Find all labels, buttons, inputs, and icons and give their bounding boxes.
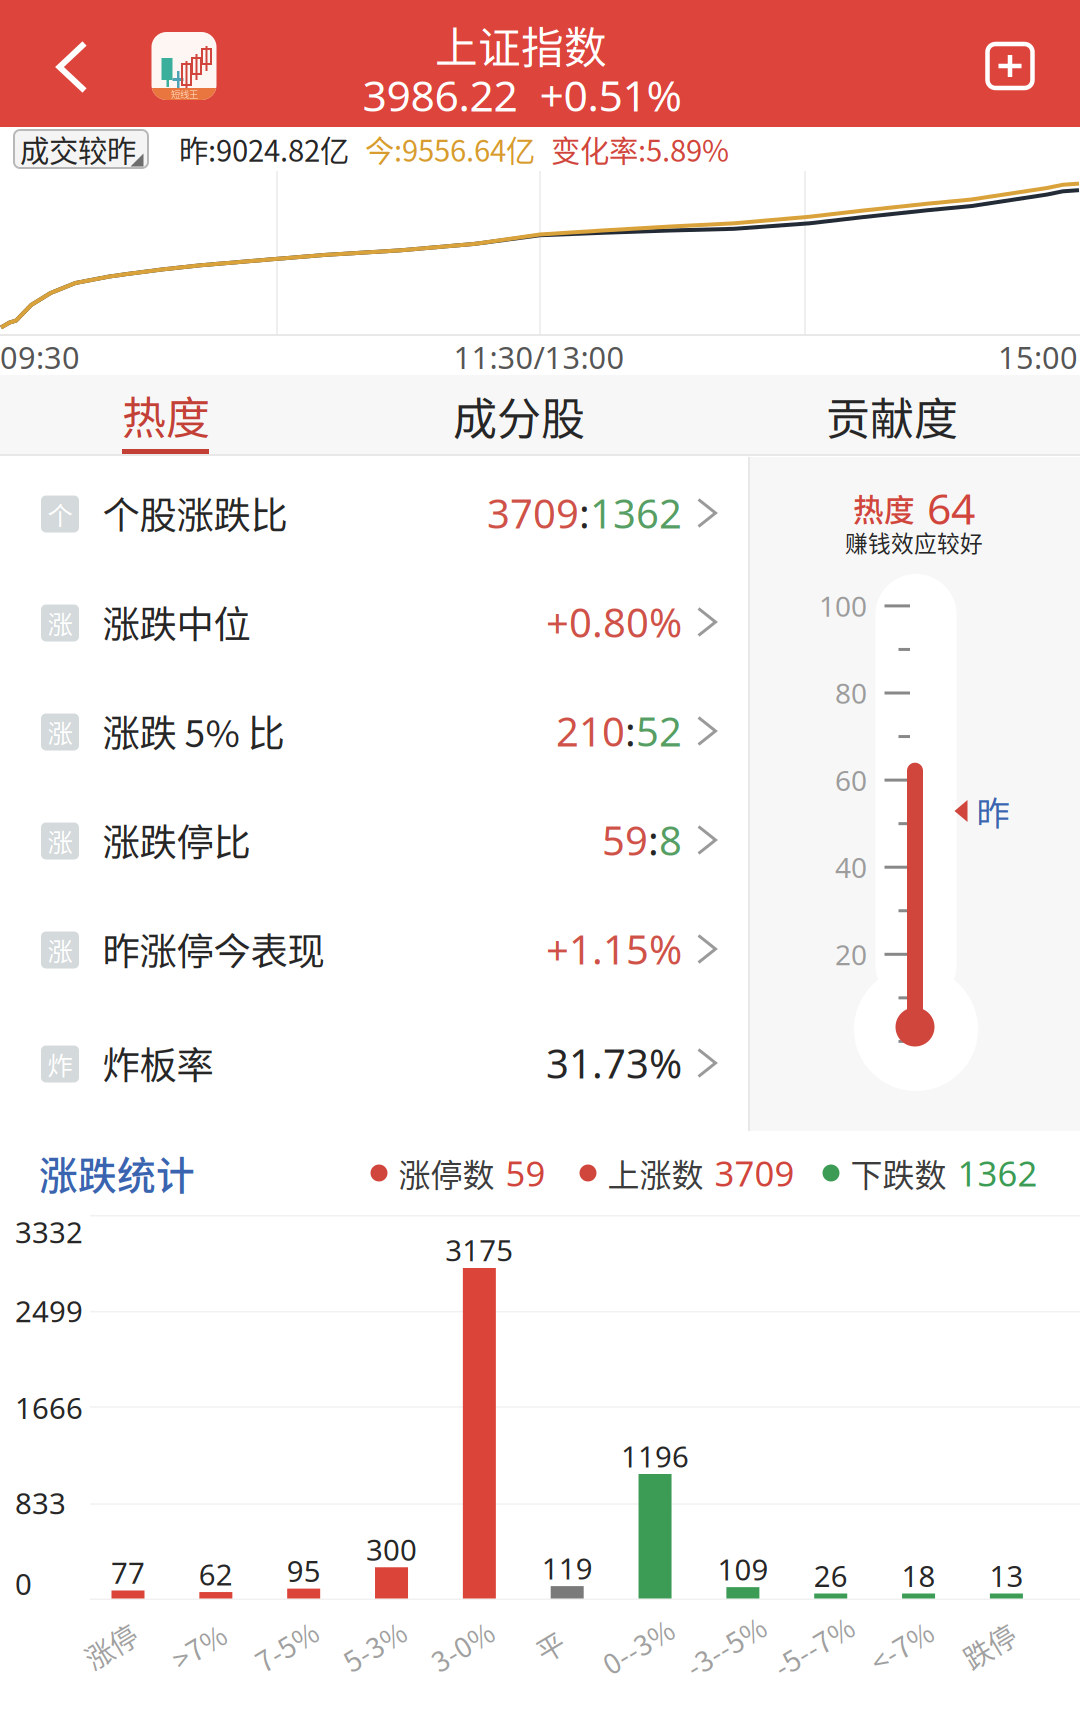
staticText: 炸板率 bbox=[102, 1036, 213, 1090]
staticText: 52 bbox=[636, 704, 682, 758]
staticText: 8 bbox=[659, 813, 682, 867]
staticText: 7-5% bbox=[253, 1626, 321, 1666]
staticText: 3332 bbox=[15, 1212, 83, 1252]
staticText: 下跌数 bbox=[850, 1150, 946, 1196]
staticText: 20 bbox=[835, 935, 867, 973]
button[interactable]: 成分股 bbox=[339, 375, 699, 456]
staticText: 833 bbox=[15, 1483, 66, 1523]
staticText: 80 bbox=[835, 674, 867, 712]
staticText: 77 bbox=[111, 1552, 145, 1592]
staticText: 3175 bbox=[445, 1230, 513, 1270]
staticText: 300 bbox=[366, 1529, 417, 1569]
staticText: 炸 bbox=[47, 1046, 72, 1082]
staticText: 跌停 bbox=[961, 1626, 1017, 1666]
button[interactable]: 成交较昨 bbox=[14, 130, 148, 168]
staticText: 今:9556.64亿 bbox=[365, 128, 535, 170]
staticText: 上证指数 bbox=[435, 14, 607, 76]
staticText: 5-3% bbox=[340, 1626, 408, 1666]
button[interactable]: 炸 bbox=[0, 1009, 748, 1119]
staticText: 平 bbox=[536, 1626, 564, 1666]
button[interactable]: Add bbox=[969, 26, 1050, 106]
staticText: 个 bbox=[47, 496, 72, 532]
button[interactable]: 涨 bbox=[0, 568, 748, 678]
staticText: 涨跌 5% 比 bbox=[102, 704, 284, 758]
staticText: 昨:9024.82亿 bbox=[179, 128, 349, 170]
staticText: 涨跌统计 bbox=[39, 1145, 195, 1201]
staticText: 0 bbox=[15, 1563, 32, 1603]
staticText: 0--3% bbox=[599, 1626, 677, 1666]
staticText: +0.80% bbox=[546, 595, 682, 649]
staticText: 涨跌停比 bbox=[102, 813, 250, 867]
staticText: 3709 bbox=[714, 1149, 794, 1197]
staticText: 60 bbox=[835, 761, 867, 799]
staticText: 昨涨停今表现 bbox=[102, 922, 324, 976]
staticText: 59 bbox=[505, 1149, 545, 1197]
staticText: 涨停数 bbox=[398, 1150, 494, 1196]
button[interactable]: 涨 bbox=[0, 895, 748, 1005]
button[interactable]: 个 bbox=[0, 459, 748, 569]
staticText: 13 bbox=[989, 1555, 1023, 1595]
staticText: 210 bbox=[556, 704, 625, 758]
staticText: 1362 bbox=[590, 486, 682, 540]
staticText: 3-0% bbox=[428, 1626, 496, 1666]
staticText: 11:30/13:00 bbox=[453, 336, 624, 378]
staticText: 贡献度 bbox=[826, 384, 958, 448]
staticText: 涨 bbox=[47, 932, 72, 968]
staticText: 上涨数 bbox=[607, 1150, 703, 1196]
staticText: 59 bbox=[602, 813, 648, 867]
staticText: 31.73% bbox=[546, 1036, 682, 1090]
staticText: -3--5% bbox=[682, 1626, 770, 1666]
staticText: 15:00 bbox=[998, 336, 1078, 378]
staticText: 09:30 bbox=[0, 336, 80, 378]
button[interactable]: Back bbox=[25, 19, 118, 114]
staticText: 119 bbox=[542, 1548, 593, 1588]
staticText: 涨 bbox=[47, 714, 72, 750]
staticText: 成分股 bbox=[453, 384, 585, 448]
staticText: 1362 bbox=[957, 1149, 1037, 1197]
staticText: 涨停 bbox=[83, 1626, 139, 1666]
staticText: 短线王 bbox=[171, 87, 198, 101]
staticText: : bbox=[648, 813, 659, 867]
staticText: 1666 bbox=[15, 1388, 83, 1428]
staticText: 昨 bbox=[976, 787, 1009, 835]
staticText: 涨跌中位 bbox=[102, 595, 250, 649]
staticText: 40 bbox=[835, 848, 867, 886]
staticText: 涨 bbox=[47, 823, 72, 859]
staticText: 18 bbox=[902, 1555, 936, 1595]
staticText: 95 bbox=[287, 1551, 321, 1591]
staticText: 热度 bbox=[122, 383, 210, 447]
staticText: >7% bbox=[170, 1626, 228, 1666]
staticText: <-7% bbox=[868, 1626, 936, 1666]
staticText: 赚钱效应较好 bbox=[845, 526, 983, 558]
staticText: 1196 bbox=[621, 1436, 689, 1476]
button[interactable]: 涨 bbox=[0, 786, 748, 896]
button[interactable]: 热度 bbox=[0, 375, 346, 456]
staticText: 成交较昨 bbox=[20, 128, 136, 170]
staticText: 2499 bbox=[15, 1291, 83, 1331]
staticText: -5--7% bbox=[770, 1626, 858, 1666]
staticText: 109 bbox=[717, 1549, 768, 1589]
staticText: 变化率:5.89% bbox=[551, 128, 729, 170]
staticText: 个股涨跌比 bbox=[102, 486, 287, 540]
staticText: 涨 bbox=[47, 605, 72, 641]
staticText: 26 bbox=[814, 1555, 848, 1595]
staticText: 100 bbox=[819, 587, 867, 625]
staticText: : bbox=[625, 704, 636, 758]
button[interactable]: 贡献度 bbox=[712, 375, 1072, 456]
staticText: 3709 bbox=[487, 486, 579, 540]
button[interactable]: 涨 bbox=[0, 677, 748, 787]
staticText: : bbox=[579, 486, 590, 540]
staticText: +1.15% bbox=[546, 922, 682, 976]
staticText: 热度 bbox=[853, 486, 915, 530]
staticText: 62 bbox=[199, 1554, 233, 1594]
staticText: 3986.22 +0.51% bbox=[362, 66, 681, 124]
staticText: 64 bbox=[927, 479, 975, 537]
